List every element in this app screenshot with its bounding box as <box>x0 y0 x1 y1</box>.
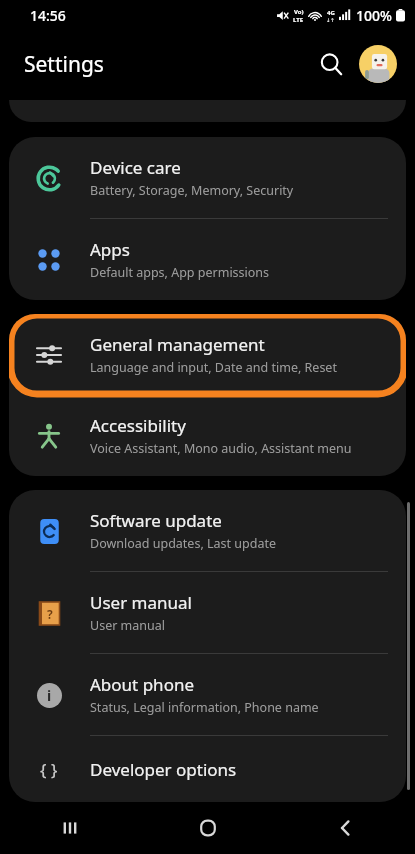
button[interactable]: Software update <box>9 490 406 571</box>
staticText: 14:56 <box>30 6 66 25</box>
staticText: Status, Legal information, Phone name <box>90 699 319 716</box>
staticText: Software update <box>90 509 222 532</box>
button[interactable]: Account profile <box>359 45 397 83</box>
staticText: Vo) <box>294 8 304 16</box>
staticText: i <box>47 686 52 705</box>
staticText: Battery, Storage, Memory, Security <box>90 182 294 199</box>
staticText: 100% <box>356 6 392 25</box>
button[interactable]: Recent apps <box>0 802 139 854</box>
button[interactable]: ? <box>9 572 406 653</box>
staticText: Apps <box>90 238 130 261</box>
button[interactable]: i <box>9 654 406 735</box>
button[interactable]: Home <box>139 802 277 854</box>
staticText: Voice Assistant, Mono audio, Assistant m… <box>90 440 352 457</box>
button[interactable] <box>9 100 406 122</box>
staticText: Language and input, Date and time, Reset <box>90 359 337 376</box>
staticText: 4G <box>327 9 335 17</box>
staticText: { } <box>40 758 58 781</box>
staticText: ↓↑ <box>326 17 335 23</box>
staticText: User manual <box>90 591 192 614</box>
button[interactable]: Device care <box>9 137 406 218</box>
button[interactable]: General management <box>9 314 406 395</box>
staticText: Download updates, Last update <box>90 535 276 552</box>
button[interactable]: Search <box>309 42 353 86</box>
button[interactable]: Apps <box>9 219 406 300</box>
staticText: Accessibility <box>90 414 186 437</box>
staticText: LTE <box>293 16 304 24</box>
staticText: About phone <box>90 673 195 696</box>
button[interactable]: Back <box>277 802 415 854</box>
staticText: ? <box>47 606 53 622</box>
staticText: Settings <box>24 50 104 79</box>
button[interactable]: Accessibility <box>9 395 406 476</box>
staticText: Developer options <box>90 758 237 781</box>
staticText: Device care <box>90 156 181 179</box>
staticText: General management <box>90 333 265 356</box>
staticText: Default apps, App permissions <box>90 264 270 281</box>
button[interactable]: { } <box>9 736 406 802</box>
staticText: User manual <box>90 617 165 634</box>
